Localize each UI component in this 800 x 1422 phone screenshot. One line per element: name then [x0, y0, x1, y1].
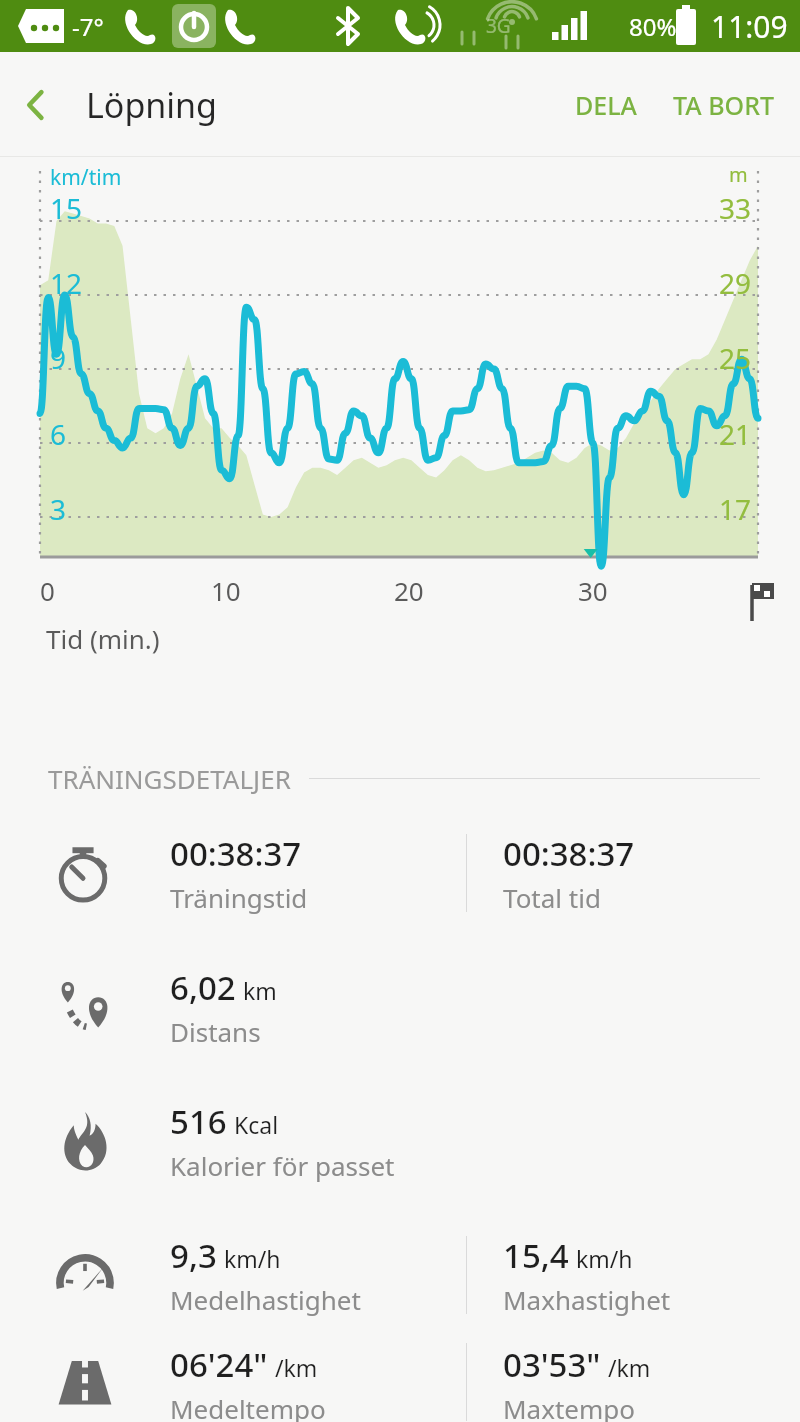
staticText: 3G	[486, 13, 511, 39]
staticText: 6	[50, 415, 67, 453]
staticText: 17	[719, 490, 752, 528]
button[interactable]: 516	[0, 1074, 800, 1208]
staticText: 3	[50, 490, 67, 528]
staticText: 29	[719, 264, 752, 302]
staticText: Total tid	[503, 880, 601, 915]
button[interactable]: 6,02	[0, 940, 800, 1074]
staticText: 15,4	[503, 1233, 569, 1278]
staticText: TA BORT	[673, 88, 774, 122]
staticText: 20	[394, 573, 424, 608]
staticText: km	[243, 975, 277, 1006]
staticText: 21	[719, 415, 752, 453]
staticText: Medeltempo	[170, 1391, 326, 1422]
staticText: 06'24"	[170, 1342, 268, 1387]
staticText: 30	[578, 573, 608, 608]
staticText: Maxtempo	[503, 1391, 636, 1422]
staticText: 15	[50, 189, 83, 227]
staticText: 25	[719, 339, 752, 377]
staticText: Maxhastighet	[503, 1282, 671, 1317]
staticText: km/tim	[50, 163, 122, 192]
staticText: Löpning	[86, 82, 218, 128]
button[interactable]: 9,3	[0, 1208, 800, 1342]
button[interactable]: DELA	[563, 78, 649, 132]
staticText: 9,3	[170, 1233, 217, 1278]
staticText: 80%	[629, 10, 677, 43]
staticText: Medelhastighet	[170, 1282, 361, 1317]
staticText: 03'53"	[503, 1342, 601, 1387]
staticText: 0	[40, 573, 55, 608]
staticText: 33	[719, 189, 752, 227]
staticText: -7°	[72, 10, 104, 43]
button[interactable]: Back	[0, 69, 72, 141]
staticText: km/h	[224, 1243, 281, 1274]
staticText: 00:38:37	[503, 831, 635, 876]
staticText: DELA	[575, 88, 637, 122]
staticText: 11:09	[711, 6, 788, 47]
staticText: Tid (min.)	[46, 621, 160, 656]
staticText: 6,02	[170, 965, 236, 1010]
staticText: 9	[50, 339, 67, 377]
staticText: 516	[170, 1099, 227, 1144]
staticText: 10	[211, 573, 241, 608]
button[interactable]: TA BORT	[661, 78, 786, 132]
staticText: 00:38:37	[170, 831, 302, 876]
button[interactable]: 06'24"	[0, 1342, 800, 1422]
staticText: 12	[50, 264, 83, 302]
staticText: /km	[608, 1352, 651, 1383]
staticText: Kalorier för passet	[170, 1148, 395, 1183]
staticText: Träningstid	[170, 880, 308, 915]
button[interactable]: 00:38:37	[0, 806, 800, 940]
staticText: TRÄNINGSDETALJER	[48, 761, 291, 796]
staticText: Kcal	[234, 1109, 279, 1140]
staticText: /km	[275, 1352, 318, 1383]
staticText: m	[729, 161, 748, 188]
staticText: Distans	[170, 1014, 261, 1049]
staticText: km/h	[576, 1243, 633, 1274]
